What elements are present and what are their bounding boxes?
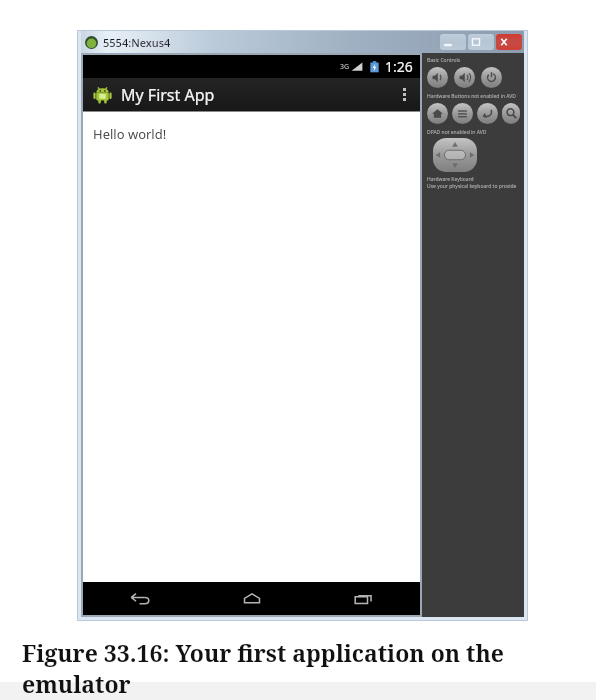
button[interactable]: Close [496, 34, 522, 50]
staticText: Use your physical keyboard to provide in… [427, 183, 520, 190]
button[interactable]: Home [427, 103, 448, 124]
button[interactable]: Back [83, 582, 196, 615]
button[interactable]: Search [502, 103, 520, 124]
button[interactable]: Maximize [468, 34, 494, 50]
button[interactable]: Menu [452, 103, 473, 124]
staticText: Basic Controls [427, 57, 461, 64]
staticText: 5554:Nexus4 [103, 35, 171, 50]
button[interactable]: Power [481, 67, 502, 88]
button[interactable]: Volume down [427, 67, 448, 88]
staticText: Hardware Buttons not enabled in AVD [427, 93, 516, 100]
staticText: Hardware Keyboard [427, 176, 474, 183]
staticText: Figure 33.16: Your first application on … [22, 637, 596, 699]
staticText: 3G [340, 62, 350, 72]
staticText: My First App [121, 84, 215, 106]
button[interactable]: Minimize [440, 34, 466, 50]
button[interactable]: D-pad [433, 138, 477, 172]
staticText: 1:26 [385, 57, 413, 76]
button[interactable]: Volume up [454, 67, 475, 88]
button[interactable]: More options [388, 78, 420, 111]
staticText: DPAD not enabled in AVD [427, 129, 487, 136]
staticText: Hello world! [93, 125, 167, 143]
button[interactable]: Home [196, 582, 308, 615]
button[interactable]: Back [477, 103, 498, 124]
button[interactable]: Recent apps [308, 582, 420, 615]
